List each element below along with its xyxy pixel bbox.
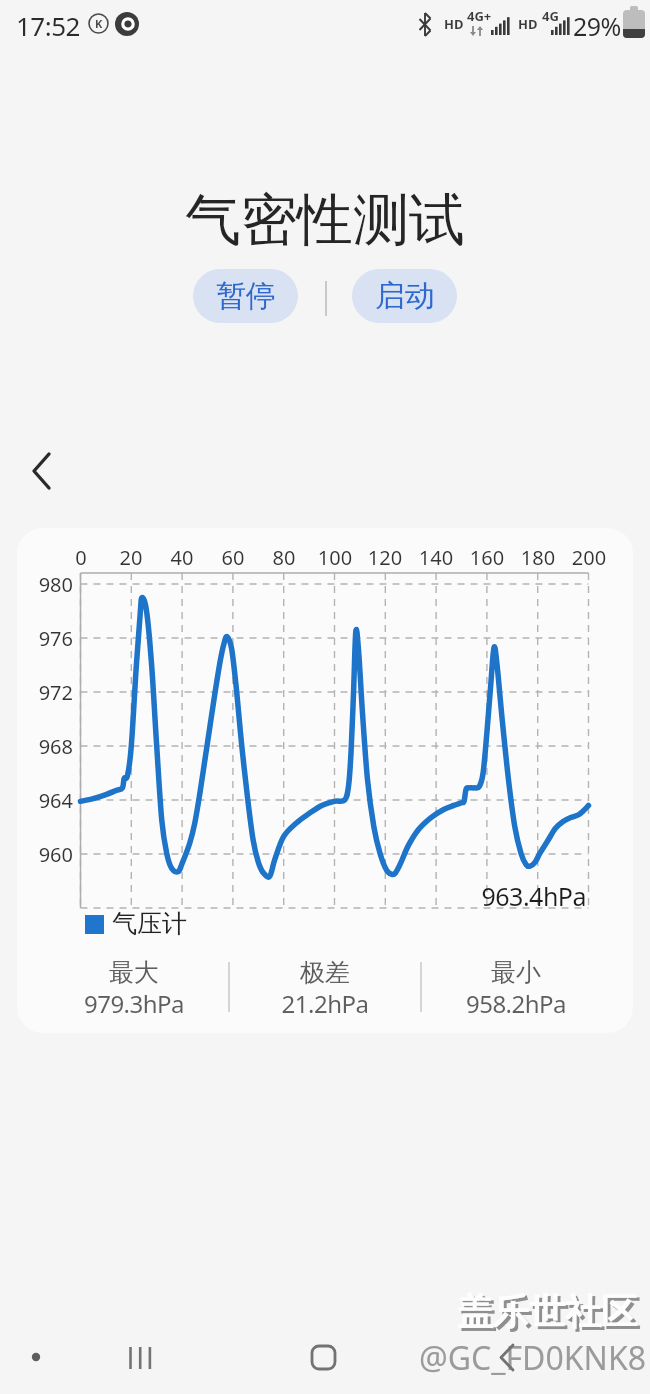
staticText: 60: [203, 544, 263, 571]
staticText: 40: [152, 544, 212, 571]
staticText: 最小: [416, 957, 616, 988]
staticText: 976: [21, 625, 73, 652]
staticText: 180: [508, 544, 568, 571]
staticText: 964: [21, 787, 73, 814]
staticText: 17:52: [16, 8, 80, 43]
staticText: 140: [406, 544, 466, 571]
staticText: 200: [559, 544, 619, 571]
staticText: 958.2hPa: [416, 987, 616, 1020]
staticText: 80: [254, 544, 314, 571]
staticText: HD: [444, 15, 464, 33]
staticText: 980: [21, 571, 73, 598]
staticText: 160: [457, 544, 517, 571]
staticText: 0: [51, 544, 111, 571]
staticText: 气压计: [112, 908, 187, 939]
button[interactable]: 暂停: [193, 269, 298, 323]
staticText: 21.2hPa: [225, 987, 425, 1020]
button[interactable]: [483, 1336, 531, 1382]
staticText: 972: [21, 679, 73, 706]
button[interactable]: 启动: [352, 269, 457, 323]
button[interactable]: [117, 1336, 165, 1382]
staticText: 极差: [225, 957, 425, 988]
staticText: 启动: [375, 277, 435, 315]
staticText: 最大: [34, 957, 234, 988]
staticText: 29%: [573, 9, 621, 43]
button[interactable]: [299, 1336, 347, 1382]
staticText: 4G: [542, 7, 559, 25]
staticText: 963.4hPa: [386, 879, 586, 913]
staticText: 盖乐世社区: [302, 1292, 640, 1337]
staticText: 4G+: [467, 7, 492, 25]
staticText: 968: [21, 733, 73, 760]
staticText: 气密性测试: [0, 185, 650, 256]
staticText: 960: [21, 841, 73, 868]
staticText: 盖乐世社区: [299, 1289, 637, 1334]
staticText: K: [95, 16, 103, 31]
staticText: HD: [518, 15, 538, 33]
staticText: @GC_FD0KNK8: [300, 1336, 646, 1380]
staticText: 100: [305, 544, 365, 571]
staticText: 暂停: [216, 277, 276, 315]
staticText: 20: [101, 544, 161, 571]
staticText: 120: [355, 544, 415, 571]
button[interactable]: [18, 442, 68, 498]
staticText: 979.3hPa: [34, 987, 234, 1020]
